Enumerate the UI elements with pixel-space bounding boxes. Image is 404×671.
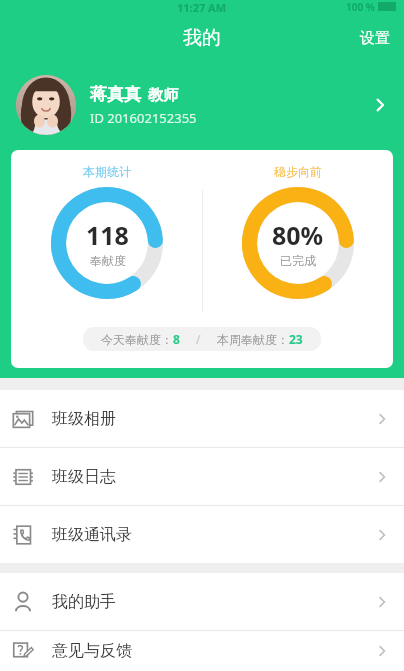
other: 班级日志 bbox=[12, 466, 34, 488]
staticText: 23 bbox=[289, 331, 303, 347]
staticText: 我的 bbox=[183, 26, 221, 50]
staticText: 奉献度 bbox=[90, 253, 126, 268]
staticText: 8 bbox=[173, 331, 180, 347]
staticText: 我的助手 bbox=[52, 592, 116, 612]
button[interactable]: 意见与反馈 bbox=[0, 631, 404, 671]
staticText: 班级相册 bbox=[52, 409, 116, 429]
other: 班级通讯录 bbox=[12, 524, 34, 546]
button[interactable]: 本期统计 bbox=[11, 150, 393, 368]
button[interactable]: 头像 bbox=[0, 63, 404, 147]
staticText: 稳步向前 bbox=[274, 164, 322, 179]
staticText: 本期统计 bbox=[83, 164, 131, 179]
other: 我的助手 bbox=[12, 591, 34, 613]
button[interactable]: 今天奉献度： bbox=[83, 327, 321, 351]
staticText: 蒋真真 bbox=[90, 84, 141, 105]
staticText: ID 201602152355 bbox=[90, 109, 197, 127]
staticText: 班级日志 bbox=[52, 467, 116, 487]
staticText: 本周奉献度： bbox=[217, 332, 289, 347]
staticText: 11:27 AM bbox=[177, 0, 227, 13]
staticText: 已完成 bbox=[280, 253, 316, 268]
staticText: 100 % bbox=[346, 0, 375, 13]
staticText: 118 bbox=[86, 218, 129, 252]
button[interactable]: 设置 bbox=[346, 21, 404, 56]
staticText: / bbox=[196, 331, 201, 347]
staticText: 80% bbox=[272, 218, 324, 252]
other: 班级相册 bbox=[12, 408, 34, 430]
staticText: 班级通讯录 bbox=[52, 525, 132, 545]
other: 意见与反馈 bbox=[12, 640, 34, 662]
button[interactable]: 班级通讯录 bbox=[0, 506, 404, 563]
button[interactable]: 头像 bbox=[16, 75, 76, 135]
staticText: 设置 bbox=[360, 29, 390, 48]
staticText: 意见与反馈 bbox=[52, 641, 132, 661]
staticText: 今天奉献度： bbox=[101, 332, 173, 347]
button[interactable]: 我的助手 bbox=[0, 573, 404, 630]
button[interactable]: 班级相册 bbox=[0, 390, 404, 447]
button[interactable]: 班级日志 bbox=[0, 448, 404, 505]
staticText: 教师 bbox=[148, 86, 178, 105]
